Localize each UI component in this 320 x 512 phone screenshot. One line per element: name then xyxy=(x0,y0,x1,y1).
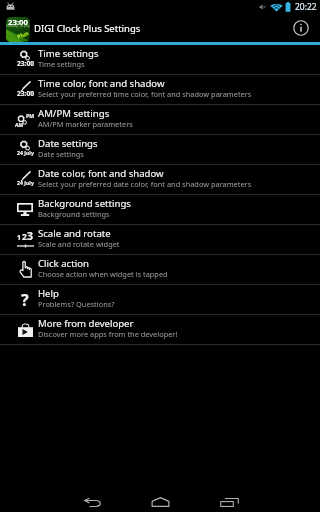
staticText: More from developer xyxy=(38,317,134,330)
button[interactable]: 1 xyxy=(0,225,320,255)
button[interactable]: Recent apps xyxy=(205,492,253,512)
staticText: ? xyxy=(21,289,29,311)
button[interactable]: 24 July xyxy=(0,165,320,195)
button[interactable]: ? xyxy=(0,285,320,315)
staticText: DIGI Clock Plus Settings xyxy=(34,22,141,35)
staticText: 20:22 xyxy=(295,1,317,13)
button[interactable]: About xyxy=(282,14,320,42)
staticText: Click action xyxy=(38,257,89,270)
staticText: 24 July xyxy=(17,179,34,186)
button[interactable]: Click action xyxy=(0,255,320,285)
button[interactable]: Home xyxy=(136,492,184,512)
staticText: Date settings xyxy=(38,137,98,150)
staticText: 23:00 xyxy=(17,59,34,68)
staticText: Problems? Questions? xyxy=(38,299,115,309)
button[interactable]: Background settings xyxy=(0,195,320,225)
staticText: 23:00 xyxy=(8,17,29,28)
staticText: 2 xyxy=(22,231,27,243)
button[interactable]: PM xyxy=(0,105,320,135)
staticText: Select your preferred time color, font a… xyxy=(38,89,252,99)
button[interactable]: More from developer xyxy=(0,315,320,345)
staticText: Choose action when widget is tapped xyxy=(38,269,168,279)
button[interactable]: 23:00 xyxy=(0,75,320,105)
staticText: 23:00 xyxy=(17,89,34,98)
staticText: Scale and rotate widget xyxy=(38,239,120,249)
staticText: Time settings xyxy=(38,59,85,69)
staticText: 3 xyxy=(27,229,34,243)
button[interactable]: Back xyxy=(68,492,116,512)
staticText: Select your preferred date color, font a… xyxy=(38,179,252,189)
staticText: Plus xyxy=(16,29,30,41)
staticText: AM/PM settings xyxy=(38,107,110,120)
staticText: Date color, font and shadow xyxy=(38,167,164,180)
staticText: Time color, font and shadow xyxy=(38,77,165,90)
staticText: 1 xyxy=(17,233,22,243)
staticText: Background settings xyxy=(38,197,131,210)
staticText: Discover more apps from the developer! xyxy=(38,329,178,339)
staticText: Time settings xyxy=(38,47,99,60)
button[interactable]: 24 July xyxy=(0,135,320,165)
staticText: 24 July xyxy=(17,149,34,156)
staticText: Date settings xyxy=(38,149,84,159)
button[interactable]: App icon xyxy=(6,17,30,42)
staticText: Background settings xyxy=(38,209,110,219)
staticText: PM xyxy=(26,112,35,119)
button[interactable]: 23:00 xyxy=(0,45,320,75)
staticText: Scale and rotate xyxy=(38,227,111,240)
staticText: AM xyxy=(15,121,24,128)
staticText: Sunday, 24 July xyxy=(6,23,30,28)
staticText: Help xyxy=(38,287,59,300)
staticText: AM/PM marker parameters xyxy=(38,119,133,129)
